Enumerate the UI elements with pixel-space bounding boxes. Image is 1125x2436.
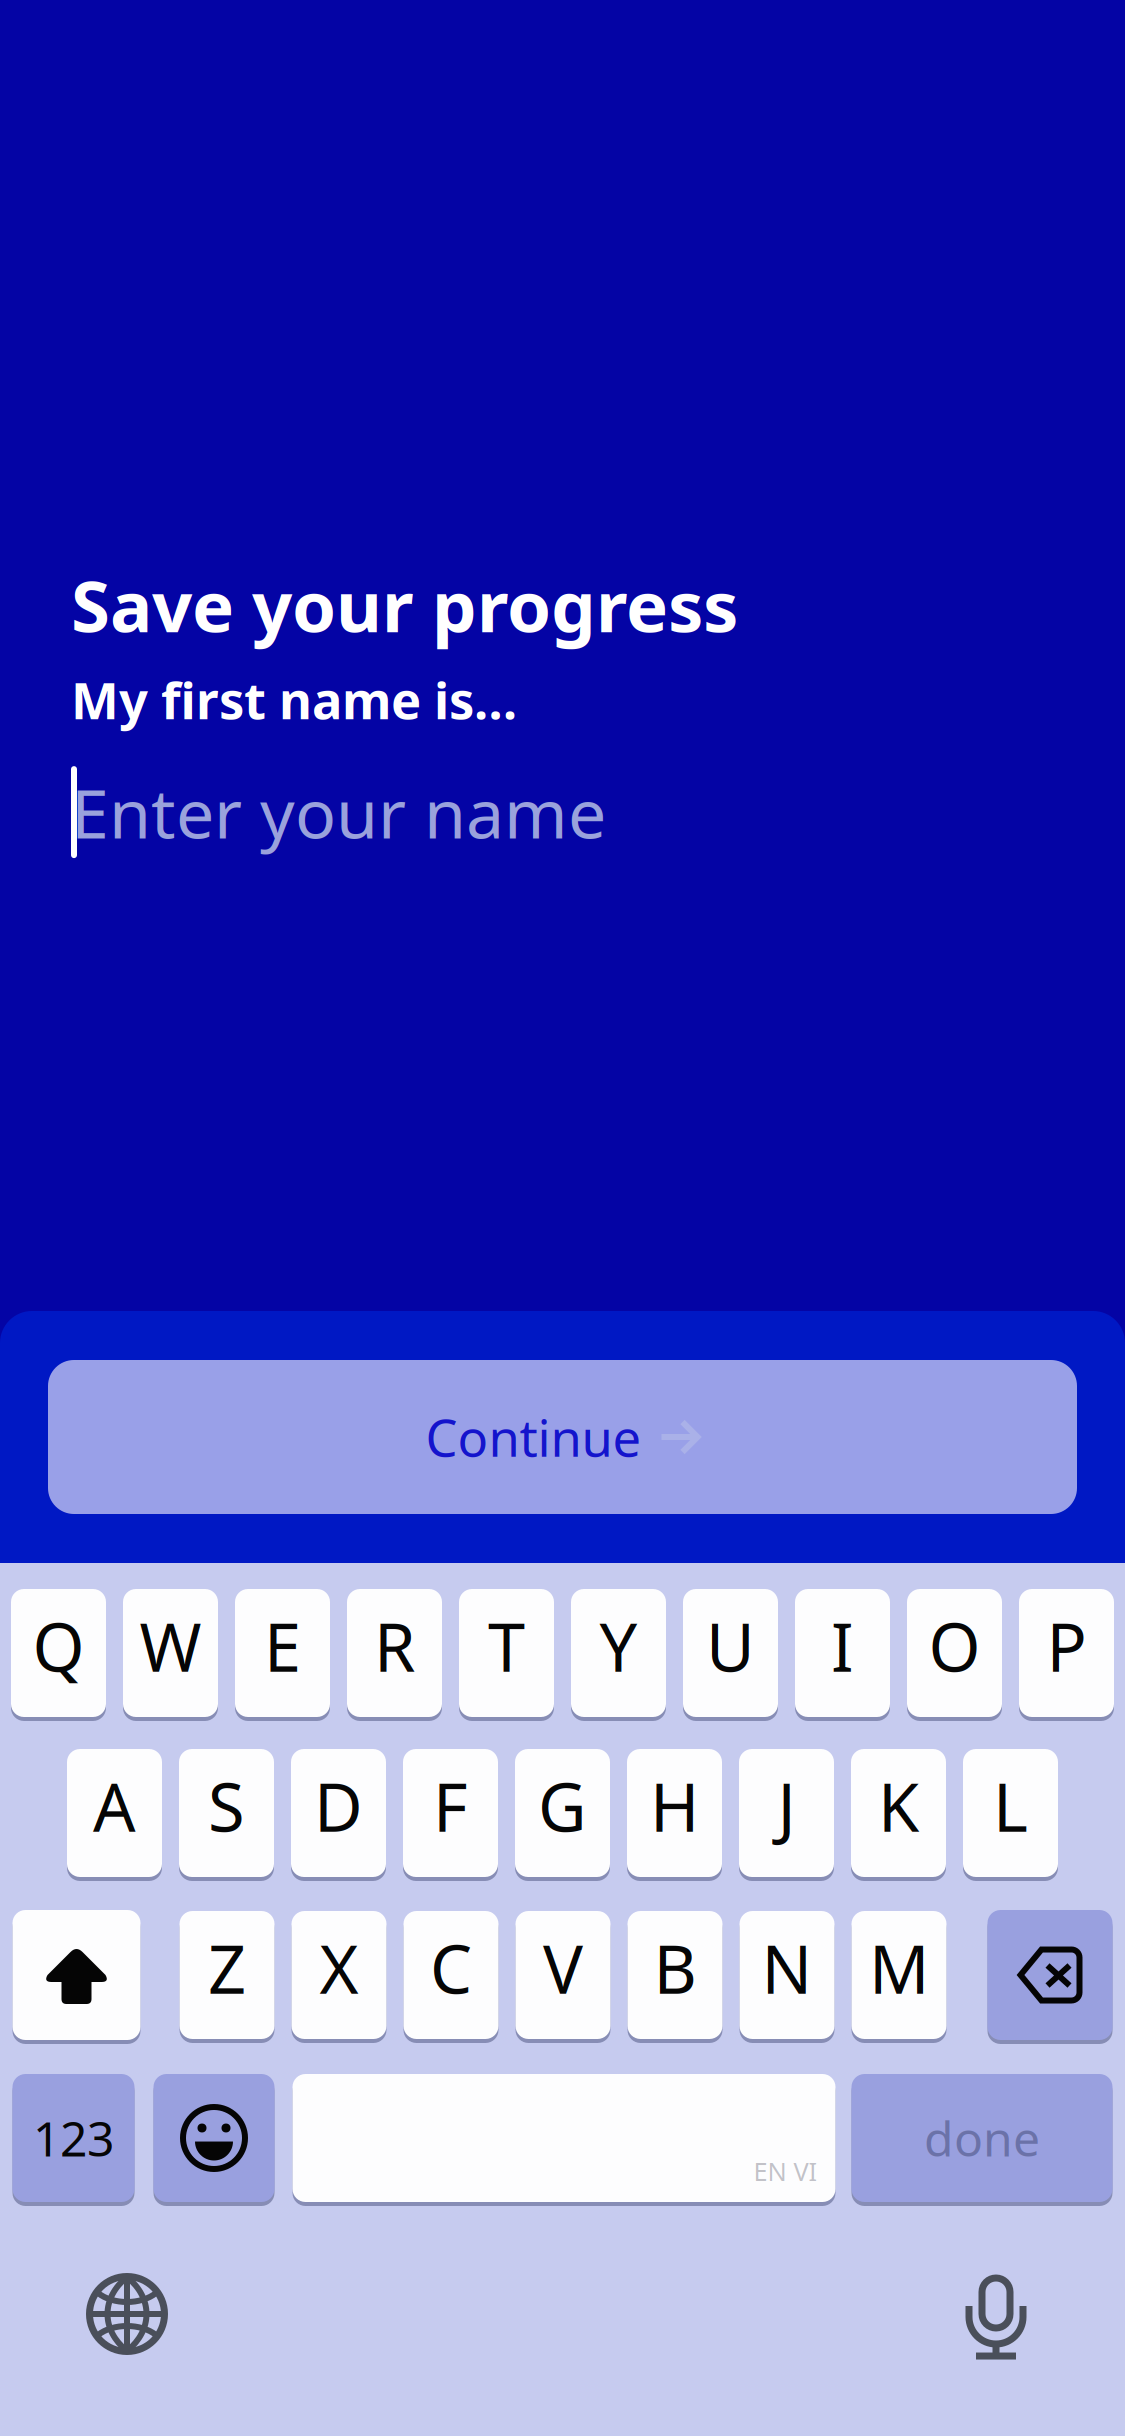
staticText: O [928,1602,980,1690]
button[interactable]: 123 [12,2072,134,2204]
button[interactable]: A [67,1747,162,1879]
button[interactable]: P [1019,1587,1114,1719]
staticText: M [869,1924,929,2012]
staticText: B [653,1924,696,2012]
staticText: done [924,2106,1040,2170]
button[interactable]: C [403,1909,498,2041]
button[interactable]: N [739,1909,834,2041]
staticText: A [93,1762,136,1850]
button[interactable]: T [459,1587,554,1719]
staticText: R [374,1602,415,1690]
staticText: EN VI [753,2154,817,2188]
staticText: S [208,1762,245,1850]
staticText: Save your progress [71,558,738,652]
staticText: U [706,1602,755,1690]
button[interactable]: J [739,1747,834,1879]
button[interactable]: F [403,1747,498,1879]
button[interactable]: I [795,1587,890,1719]
staticText: V [543,1924,583,2012]
button[interactable]: done [851,2072,1112,2204]
staticText: T [488,1602,525,1690]
staticText: C [430,1924,472,2012]
staticText: J [777,1762,795,1850]
staticText: Q [32,1602,84,1690]
button[interactable]: K [851,1747,946,1879]
staticText: My first name is… [71,666,517,733]
staticText: G [538,1762,587,1850]
button[interactable]: L [963,1747,1058,1879]
button[interactable] [12,1908,140,2042]
staticText: F [433,1762,468,1850]
button[interactable]: M [851,1909,946,2041]
staticText: E [264,1602,301,1690]
button[interactable]: G [515,1747,610,1879]
staticText: Y [599,1602,637,1690]
button[interactable]: Dictate [966,2274,1026,2362]
button[interactable]: EN VI [292,2072,835,2204]
button[interactable]: Continue [48,1360,1077,1514]
button[interactable]: Emoji [153,2072,274,2204]
button[interactable]: H [627,1747,722,1879]
staticText: P [1046,1602,1086,1690]
button[interactable]: Q [11,1587,106,1719]
staticText: I [831,1602,854,1690]
button[interactable]: Switch keyboard [87,2274,167,2354]
button[interactable]: Y [571,1587,666,1719]
button[interactable]: Z [179,1909,274,2041]
button[interactable]: X [291,1909,386,2041]
button[interactable]: W [123,1587,218,1719]
button[interactable]: B [627,1909,722,2041]
button[interactable]: D [291,1747,386,1879]
staticText: Continue [425,1403,641,1471]
button[interactable]: S [179,1747,274,1879]
button[interactable]: U [683,1587,778,1719]
staticText: H [650,1762,699,1850]
staticText: D [314,1762,363,1850]
staticText: X [319,1924,358,2012]
staticText: 123 [33,2106,114,2170]
staticText: N [761,1924,812,2012]
button[interactable]: E [235,1587,330,1719]
staticText: K [878,1762,919,1850]
staticText: Enter your name [71,767,606,857]
button[interactable]: O [907,1587,1002,1719]
staticText: W [139,1602,201,1690]
button[interactable]: Delete [987,1908,1112,2042]
staticText: Z [208,1924,246,2012]
button[interactable]: V [515,1909,610,2041]
staticText: L [993,1762,1028,1850]
button[interactable]: R [347,1587,442,1719]
